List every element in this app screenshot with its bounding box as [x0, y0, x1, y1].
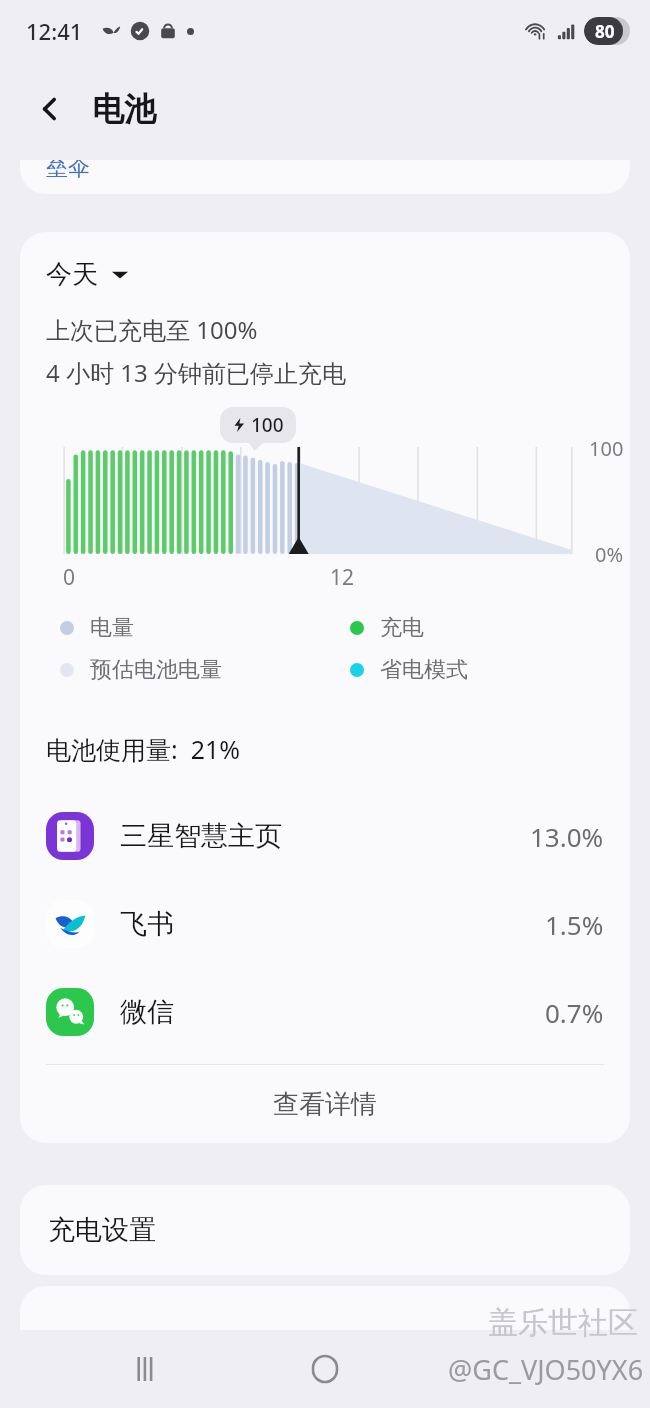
- button[interactable]: Home: [295, 1342, 355, 1396]
- staticText: 1.5%: [545, 907, 604, 942]
- staticText: 电池: [92, 89, 156, 129]
- staticText: 盖乐世社区: [488, 1304, 638, 1342]
- staticText: @GC_VJO50YX6: [448, 1351, 644, 1388]
- staticText: 0: [63, 563, 76, 592]
- staticText: 查看详情: [273, 1088, 377, 1121]
- staticText: 0.7%: [545, 995, 604, 1030]
- staticText: 80: [595, 20, 615, 43]
- staticText: 电量: [90, 614, 134, 642]
- staticText: 垒伞: [46, 160, 90, 182]
- staticText: 充电: [380, 614, 424, 642]
- staticText: 今天: [46, 258, 98, 291]
- button[interactable]: 微信: [20, 968, 630, 1056]
- button[interactable]: Recents: [118, 1342, 178, 1396]
- button[interactable]: Back: [22, 81, 78, 137]
- staticText: 充电设置: [48, 1213, 156, 1247]
- staticText: 微信: [120, 995, 174, 1029]
- staticText: 12: [330, 563, 355, 592]
- button[interactable]: 充电设置: [20, 1185, 630, 1275]
- button[interactable]: 垒伞: [20, 160, 630, 194]
- staticText: 4 小时 13 分钟前已停止充电: [46, 356, 346, 389]
- staticText: 三星智慧主页: [120, 819, 282, 853]
- staticText: 100: [589, 435, 624, 462]
- button[interactable]: 查看详情: [20, 1065, 630, 1143]
- staticText: 电池使用量: 21%: [46, 732, 241, 766]
- staticText: 12:41: [26, 16, 83, 46]
- staticText: 13.0%: [530, 819, 604, 854]
- staticText: 上次已充电至 100%: [46, 313, 258, 346]
- staticText: 飞书: [120, 907, 174, 941]
- staticText: 100: [251, 412, 284, 438]
- staticText: 省电模式: [380, 656, 468, 684]
- button[interactable]: 飞书: [20, 880, 630, 968]
- staticText: 0%: [595, 541, 624, 568]
- button[interactable]: 今天: [46, 258, 128, 291]
- button[interactable]: 三星智慧主页: [20, 792, 630, 880]
- staticText: 预估电池电量: [90, 656, 222, 684]
